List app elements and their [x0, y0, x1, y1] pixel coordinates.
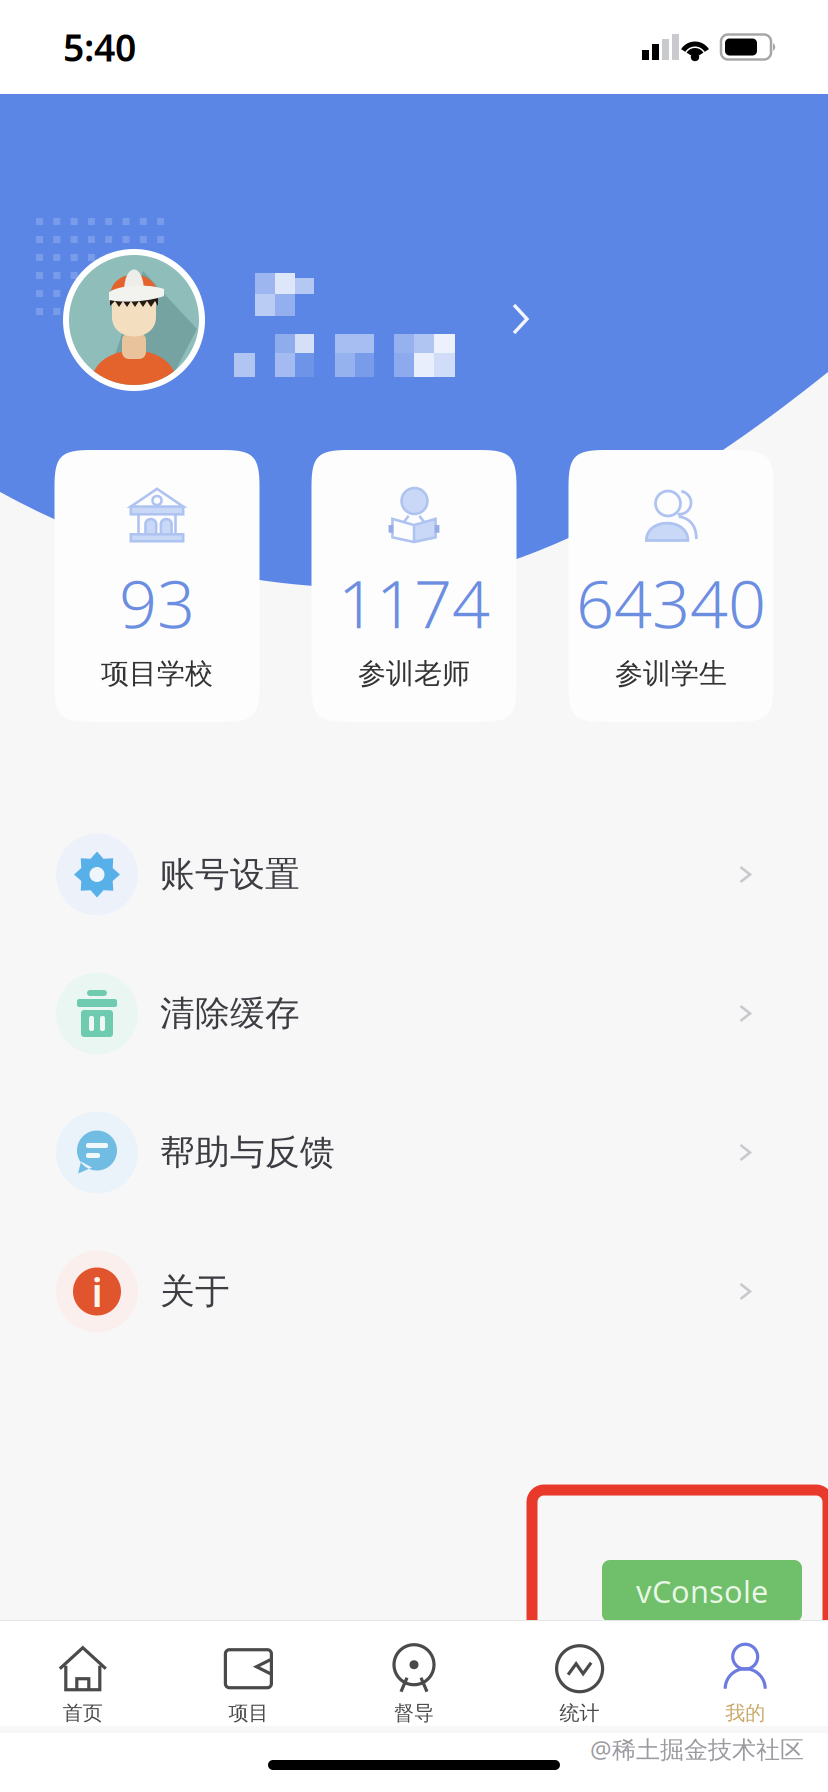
button[interactable]: 64340: [568, 450, 773, 722]
staticText: vConsole: [636, 1571, 768, 1611]
staticText: 93: [119, 558, 195, 646]
button[interactable]: 首页: [0, 1630, 166, 1740]
staticText: 参训老师: [358, 656, 470, 691]
staticText: 5:40: [63, 22, 136, 72]
button[interactable]: 1174: [311, 450, 516, 722]
button[interactable]: [0, 250, 828, 392]
button[interactable]: 账号设置: [0, 805, 828, 944]
button[interactable]: 督导: [331, 1630, 497, 1740]
staticText: 账号设置: [160, 853, 300, 896]
button[interactable]: vConsole: [602, 1560, 802, 1622]
staticText: 帮助与反馈: [160, 1131, 335, 1174]
staticText: 首页: [63, 1701, 103, 1725]
staticText: 64340: [576, 558, 766, 646]
button[interactable]: 帮助与反馈: [0, 1083, 828, 1222]
staticText: 我的: [725, 1701, 765, 1725]
staticText: 项目学校: [101, 656, 213, 691]
button[interactable]: 项目: [166, 1630, 331, 1740]
button[interactable]: 我的: [662, 1630, 828, 1740]
staticText: i: [91, 1265, 102, 1318]
staticText: 项目: [228, 1701, 268, 1725]
staticText: @稀土掘金技术社区: [590, 1733, 804, 1765]
button[interactable]: 统计: [497, 1630, 662, 1740]
staticText: 清除缓存: [160, 992, 300, 1035]
staticText: 1174: [338, 558, 490, 646]
button[interactable]: 93: [54, 450, 259, 722]
button[interactable]: 清除缓存: [0, 944, 828, 1083]
staticText: 参训学生: [615, 656, 727, 691]
staticText: 统计: [560, 1701, 600, 1725]
staticText: 督导: [394, 1701, 434, 1725]
staticText: 关于: [160, 1270, 230, 1313]
button[interactable]: i: [0, 1222, 828, 1361]
